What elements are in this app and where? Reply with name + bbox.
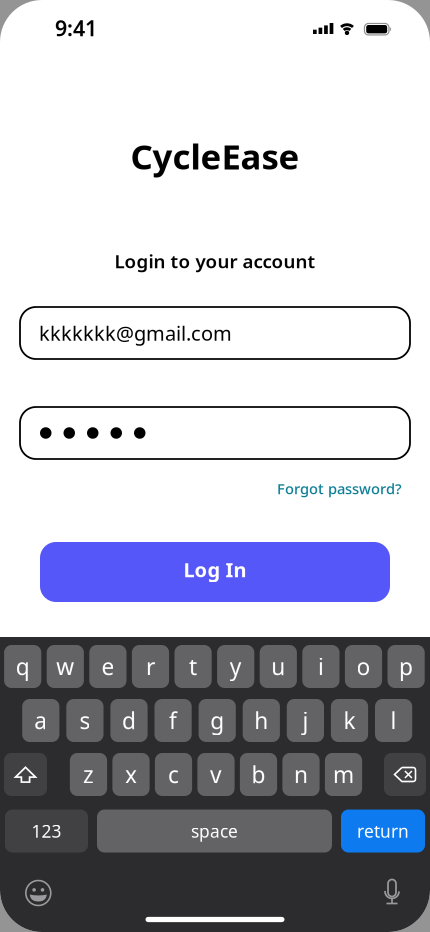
button[interactable]: f bbox=[154, 699, 192, 742]
button[interactable]: kkkkkkk@gmail.com bbox=[20, 307, 410, 359]
button[interactable]: Emoji bbox=[26, 880, 51, 905]
button[interactable]: l bbox=[375, 699, 412, 742]
button[interactable]: 123 bbox=[5, 809, 88, 852]
button[interactable]: b bbox=[240, 753, 277, 796]
staticText: n bbox=[294, 759, 308, 789]
staticText: s bbox=[79, 705, 90, 735]
button[interactable]: Dictation bbox=[384, 879, 400, 904]
button[interactable]: w bbox=[47, 645, 84, 688]
button[interactable]: Password bbox=[20, 407, 410, 459]
button[interactable]: d bbox=[110, 699, 148, 742]
button[interactable]: Delete bbox=[384, 753, 426, 796]
staticText: m bbox=[333, 759, 354, 789]
button[interactable]: j bbox=[287, 699, 324, 742]
staticText: u bbox=[271, 651, 285, 681]
button[interactable]: h bbox=[243, 699, 280, 742]
staticText: 9:41 bbox=[55, 14, 97, 42]
staticText: c bbox=[168, 759, 179, 789]
button[interactable]: z bbox=[70, 753, 107, 796]
button[interactable]: x bbox=[112, 753, 150, 796]
staticText: o bbox=[356, 651, 370, 681]
button[interactable]: k bbox=[331, 699, 368, 742]
staticText: b bbox=[251, 759, 265, 789]
button[interactable]: g bbox=[199, 699, 236, 742]
staticText: p bbox=[399, 651, 413, 681]
button[interactable]: e bbox=[89, 645, 126, 688]
staticText: return bbox=[357, 819, 409, 842]
button[interactable]: y bbox=[217, 645, 254, 688]
staticText: z bbox=[83, 759, 94, 789]
staticText: r bbox=[146, 651, 155, 681]
staticText: d bbox=[122, 705, 136, 735]
staticText: a bbox=[34, 705, 47, 735]
staticText: h bbox=[254, 705, 268, 735]
staticText: i bbox=[318, 651, 324, 681]
button[interactable]: n bbox=[282, 753, 320, 796]
button[interactable]: u bbox=[260, 645, 297, 688]
staticText: space bbox=[191, 819, 238, 842]
staticText: y bbox=[230, 651, 242, 681]
staticText: Log In bbox=[183, 556, 246, 583]
button[interactable]: o bbox=[345, 645, 382, 688]
staticText: f bbox=[169, 705, 177, 735]
button[interactable]: v bbox=[197, 753, 235, 796]
staticText: l bbox=[391, 705, 397, 735]
button[interactable]: Log In bbox=[40, 542, 390, 602]
staticText: kkkkkkk@gmail.com bbox=[39, 320, 232, 346]
button[interactable]: p bbox=[387, 645, 425, 688]
button[interactable]: q bbox=[4, 645, 41, 688]
staticText: k bbox=[343, 705, 355, 735]
button[interactable]: i bbox=[302, 645, 339, 688]
staticText: q bbox=[16, 651, 30, 681]
button[interactable]: c bbox=[155, 753, 192, 796]
staticText: j bbox=[302, 705, 308, 735]
button[interactable]: a bbox=[22, 699, 59, 742]
staticText: Forgot password? bbox=[277, 479, 402, 498]
staticText: e bbox=[101, 651, 114, 681]
button[interactable]: space bbox=[97, 809, 332, 852]
staticText: x bbox=[125, 759, 137, 789]
staticText: v bbox=[210, 759, 222, 789]
button[interactable]: r bbox=[132, 645, 169, 688]
button[interactable]: t bbox=[174, 645, 212, 688]
staticText: w bbox=[56, 651, 74, 681]
staticText: g bbox=[210, 705, 224, 735]
button[interactable]: s bbox=[66, 699, 103, 742]
staticText: 123 bbox=[31, 819, 61, 842]
button[interactable]: m bbox=[325, 753, 362, 796]
staticText: CycleEase bbox=[130, 133, 299, 179]
button[interactable]: Forgot password? bbox=[277, 479, 402, 498]
button[interactable]: return bbox=[341, 809, 425, 852]
button[interactable]: Shift bbox=[4, 753, 47, 796]
staticText: Login to your account bbox=[114, 249, 315, 273]
staticText: t bbox=[189, 651, 197, 681]
